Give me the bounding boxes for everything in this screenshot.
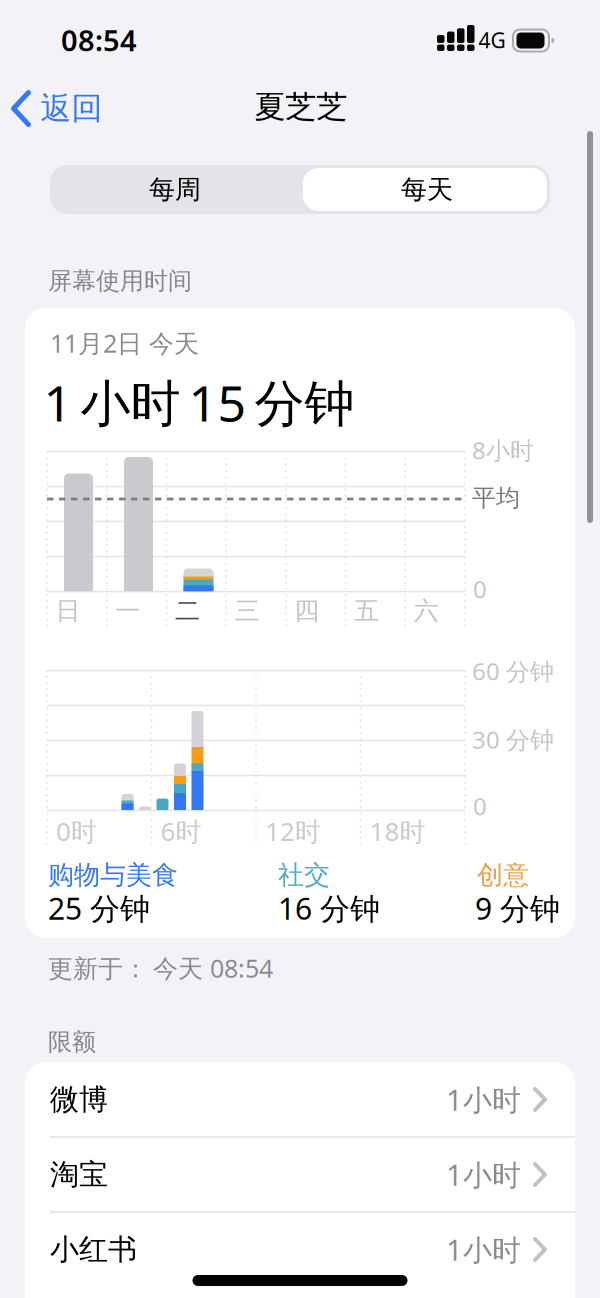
staticText: 16 分钟 [278,888,380,928]
staticText: 每周 [149,173,201,205]
staticText: 4G [478,26,505,54]
button[interactable]: 微博 [25,1062,575,1137]
staticText: 25 分钟 [48,888,150,928]
staticText: 二 [175,596,200,626]
staticText: 小红书 [50,1232,137,1267]
staticText: 购物与美食 [48,859,178,891]
staticText: 淘宝 [50,1157,108,1192]
staticText: 0 [473,573,487,605]
button[interactable]: 返回 [9,89,102,128]
staticText: 12时 [265,814,321,848]
staticText: 返回 [40,89,102,128]
staticText: 30 分钟 [472,724,554,755]
staticText: 更新于： 今天 08:54 [48,951,273,985]
staticText: 0时 [56,814,97,848]
staticText: 08:54 [61,21,137,59]
staticText: 屏幕使用时间 [48,266,192,296]
staticText: 1小时 [446,1155,521,1194]
staticText: 微博 [50,1082,108,1117]
staticText: 1小时 [446,1080,521,1119]
staticText: 夏芝芝 [254,88,347,126]
staticText: 三 [235,596,260,626]
staticText: 60 分钟 [472,655,554,687]
staticText: 9 分钟 [475,888,560,928]
staticText: 一 [115,596,140,626]
staticText: 日 [55,596,80,626]
staticText: 每天 [401,173,453,205]
button[interactable]: 淘宝 [25,1137,575,1212]
staticText: 六 [414,596,439,626]
staticText: 限额 [48,1027,96,1057]
staticText: 11月2日 今天 [50,326,199,360]
staticText: 1小时 [446,1230,521,1269]
staticText: 6时 [160,814,201,848]
button[interactable]: 每天 [305,168,549,211]
staticText: 社交 [278,859,330,891]
button[interactable]: 每周 [50,165,300,214]
button[interactable]: 小红书 [25,1212,575,1287]
staticText: 1 小时 15 分钟 [43,369,354,435]
staticText: 创意 [477,859,529,891]
staticText: 四 [294,596,319,626]
staticText: 五 [354,596,379,626]
staticText: 平均 [472,483,520,513]
staticText: 8小时 [472,434,534,466]
staticText: 0 [473,790,487,822]
staticText: 18时 [369,814,425,848]
